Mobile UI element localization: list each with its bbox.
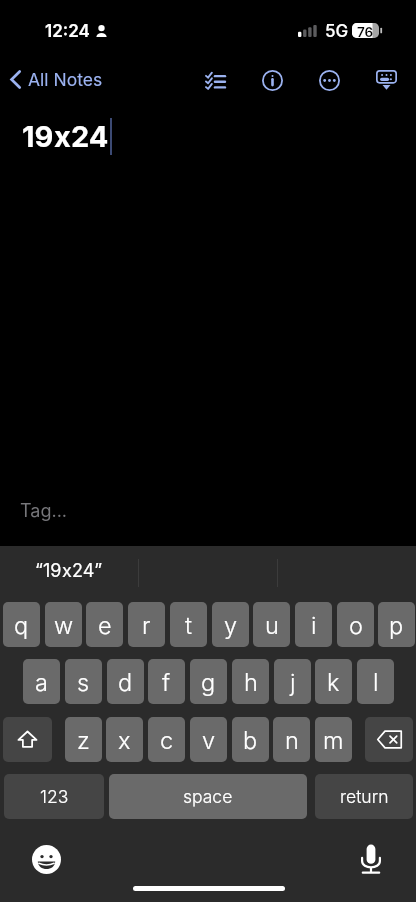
staticText: o [349, 611, 363, 639]
staticText: d [118, 668, 133, 696]
button[interactable]: i [295, 602, 332, 647]
staticText: y [224, 611, 238, 639]
staticText: 24” [72, 560, 103, 582]
button[interactable]: Checklist [193, 58, 238, 103]
button[interactable]: “19 [35, 560, 103, 582]
button[interactable]: h [232, 659, 269, 704]
button[interactable]: 123 [4, 774, 104, 819]
staticText: “19 [35, 560, 62, 582]
staticText: 76 [357, 24, 374, 40]
staticText: 19 [22, 119, 54, 154]
button[interactable]: space [109, 774, 307, 819]
staticText: u [265, 611, 279, 639]
button[interactable]: b [232, 717, 269, 762]
staticText: p [389, 611, 404, 639]
button[interactable]: t [170, 602, 207, 647]
staticText: r [142, 611, 151, 639]
staticText: h [244, 668, 258, 696]
button[interactable]: Shift [3, 717, 52, 762]
staticText: s [77, 668, 90, 696]
button[interactable]: return [315, 774, 413, 819]
staticText: f [162, 668, 171, 696]
staticText: e [98, 611, 112, 639]
staticText: c [160, 726, 174, 754]
button[interactable]: j [274, 659, 311, 704]
button[interactable]: a [23, 659, 60, 704]
staticText: t [185, 611, 193, 639]
button[interactable]: Backspace [365, 717, 413, 762]
button[interactable]: All Notes [4, 65, 111, 94]
staticText: space [183, 786, 233, 807]
staticText: All Notes [28, 69, 103, 90]
staticText: x [54, 119, 71, 154]
button[interactable]: o [337, 602, 374, 647]
staticText: j [290, 668, 296, 696]
staticText: x [118, 726, 131, 754]
staticText: n [285, 726, 299, 754]
button[interactable]: r [128, 602, 165, 647]
button[interactable]: v [190, 717, 227, 762]
staticText: q [14, 611, 29, 639]
button[interactable]: Emoji [24, 837, 68, 881]
staticText: z [77, 726, 90, 754]
button[interactable]: z [65, 717, 102, 762]
button[interactable]: q [3, 602, 40, 647]
staticText: a [35, 668, 48, 696]
staticText: v [202, 726, 216, 754]
button[interactable]: c [148, 717, 185, 762]
button[interactable]: u [253, 602, 290, 647]
button[interactable]: Info [250, 58, 295, 103]
button[interactable]: Tag... [20, 500, 68, 522]
button[interactable]: Hide keyboard [364, 58, 409, 103]
staticText: k [327, 668, 340, 696]
button[interactable]: s [65, 659, 102, 704]
button[interactable]: Dictate [349, 837, 393, 881]
button[interactable]: x [106, 717, 143, 762]
button[interactable]: m [315, 717, 352, 762]
staticText: return [340, 786, 389, 807]
staticText: 12:24 [45, 21, 90, 42]
button[interactable]: f [148, 659, 185, 704]
button[interactable]: w [45, 602, 82, 647]
button[interactable]: n [273, 717, 310, 762]
button[interactable]: g [190, 659, 227, 704]
button[interactable]: p [378, 602, 415, 647]
button[interactable]: k [315, 659, 352, 704]
button[interactable]: d [107, 659, 144, 704]
button[interactable]: l [357, 659, 394, 704]
staticText: x [62, 560, 72, 582]
staticText: i [311, 611, 317, 639]
staticText: 5G [325, 21, 349, 42]
staticText: g [201, 668, 216, 696]
button[interactable]: y [212, 602, 249, 647]
button[interactable]: More options [307, 58, 352, 103]
staticText: 123 [40, 786, 69, 807]
staticText: 24 [71, 119, 109, 154]
button[interactable]: e [86, 602, 123, 647]
staticText: w [54, 611, 74, 639]
staticText: m [323, 726, 344, 754]
staticText: l [373, 668, 379, 696]
staticText: b [243, 726, 258, 754]
